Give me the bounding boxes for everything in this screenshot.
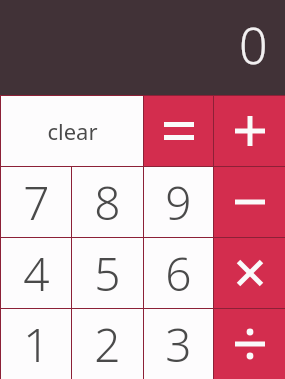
button[interactable]: clear (1, 96, 143, 166)
staticText: 6 (165, 242, 192, 305)
button[interactable]: Equals (144, 96, 213, 166)
button[interactable]: Multiply (214, 238, 285, 308)
button[interactable]: 6 (144, 238, 213, 308)
button[interactable]: 1 (1, 309, 71, 379)
button[interactable]: Minus (214, 167, 285, 237)
staticText: 1 (23, 313, 50, 376)
staticText: clear (47, 116, 98, 146)
button[interactable]: Divide (214, 309, 285, 379)
staticText: 9 (165, 171, 192, 234)
staticText: 7 (23, 171, 50, 234)
staticText: 4 (23, 242, 50, 305)
staticText: 8 (94, 171, 121, 234)
staticText: 2 (94, 313, 121, 376)
staticText: 0 (239, 11, 268, 79)
staticText: 3 (165, 313, 192, 376)
button[interactable]: 3 (144, 309, 213, 379)
button[interactable]: 5 (72, 238, 143, 308)
button[interactable]: Plus (214, 96, 285, 166)
button[interactable]: 8 (72, 167, 143, 237)
button[interactable]: 2 (72, 309, 143, 379)
button[interactable]: 4 (1, 238, 71, 308)
staticText: 5 (94, 242, 121, 305)
button[interactable]: 7 (1, 167, 71, 237)
button[interactable]: 9 (144, 167, 213, 237)
